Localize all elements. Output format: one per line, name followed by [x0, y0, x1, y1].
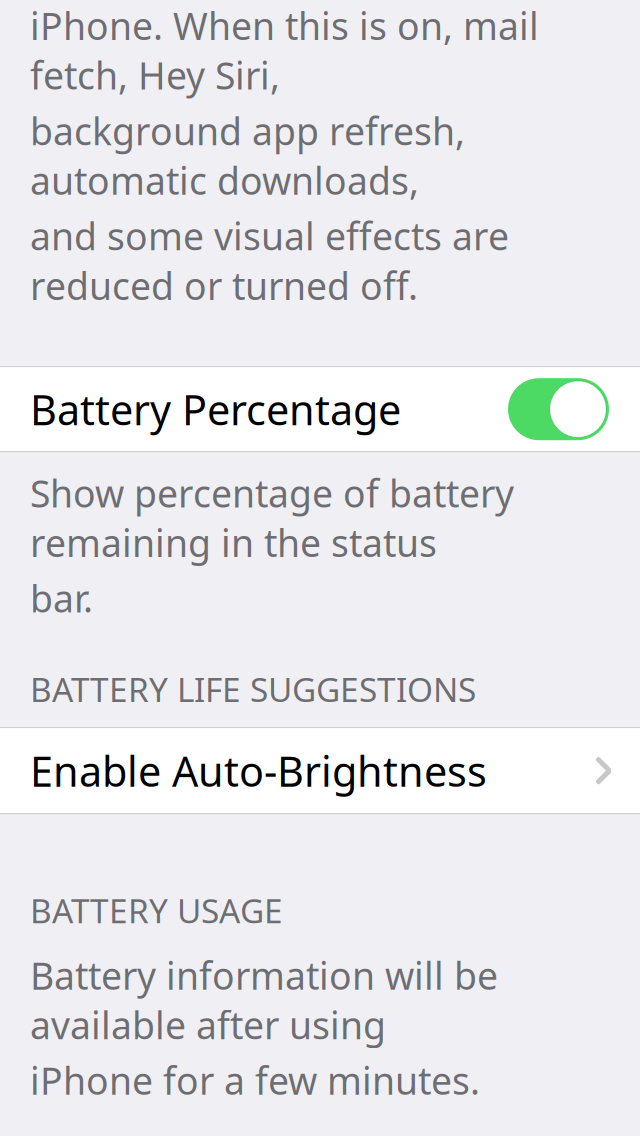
staticText: Enable Auto-Brightness [30, 743, 487, 798]
staticText: bar. [30, 573, 93, 623]
staticText: Show percentage of battery remaining in … [30, 468, 514, 567]
staticText: Battery information will be available af… [30, 950, 498, 1050]
staticText: Battery Percentage [30, 382, 401, 437]
staticText: BATTERY LIFE SUGGESTIONS [30, 667, 476, 711]
staticText: iPhone for a few minutes. [30, 1056, 480, 1105]
staticText: BATTERY USAGE [30, 888, 283, 932]
staticText: background app refresh, automatic downlo… [30, 106, 465, 205]
button[interactable]: Enable Auto-Brightness [0, 728, 640, 813]
staticText: and some visual effects are reduced or t… [30, 211, 509, 310]
button[interactable]: Battery Percentage [0, 367, 640, 451]
staticText: iPhone. When this is on, mail fetch, Hey… [30, 1, 539, 100]
